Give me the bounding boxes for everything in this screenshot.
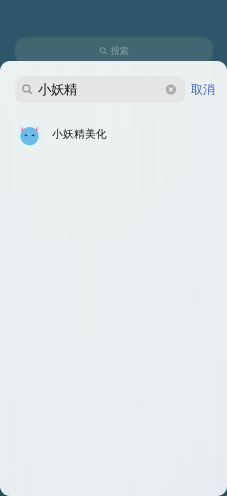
staticText: 小妖精: [38, 81, 77, 98]
staticText: 取消: [191, 82, 215, 97]
staticText: 小妖精美化: [52, 127, 107, 140]
button[interactable]: Clear text: [166, 84, 176, 94]
button[interactable]: 取消: [191, 76, 215, 103]
staticText: 搜索: [110, 45, 128, 57]
button[interactable]: 小妖精美化: [0, 114, 227, 154]
